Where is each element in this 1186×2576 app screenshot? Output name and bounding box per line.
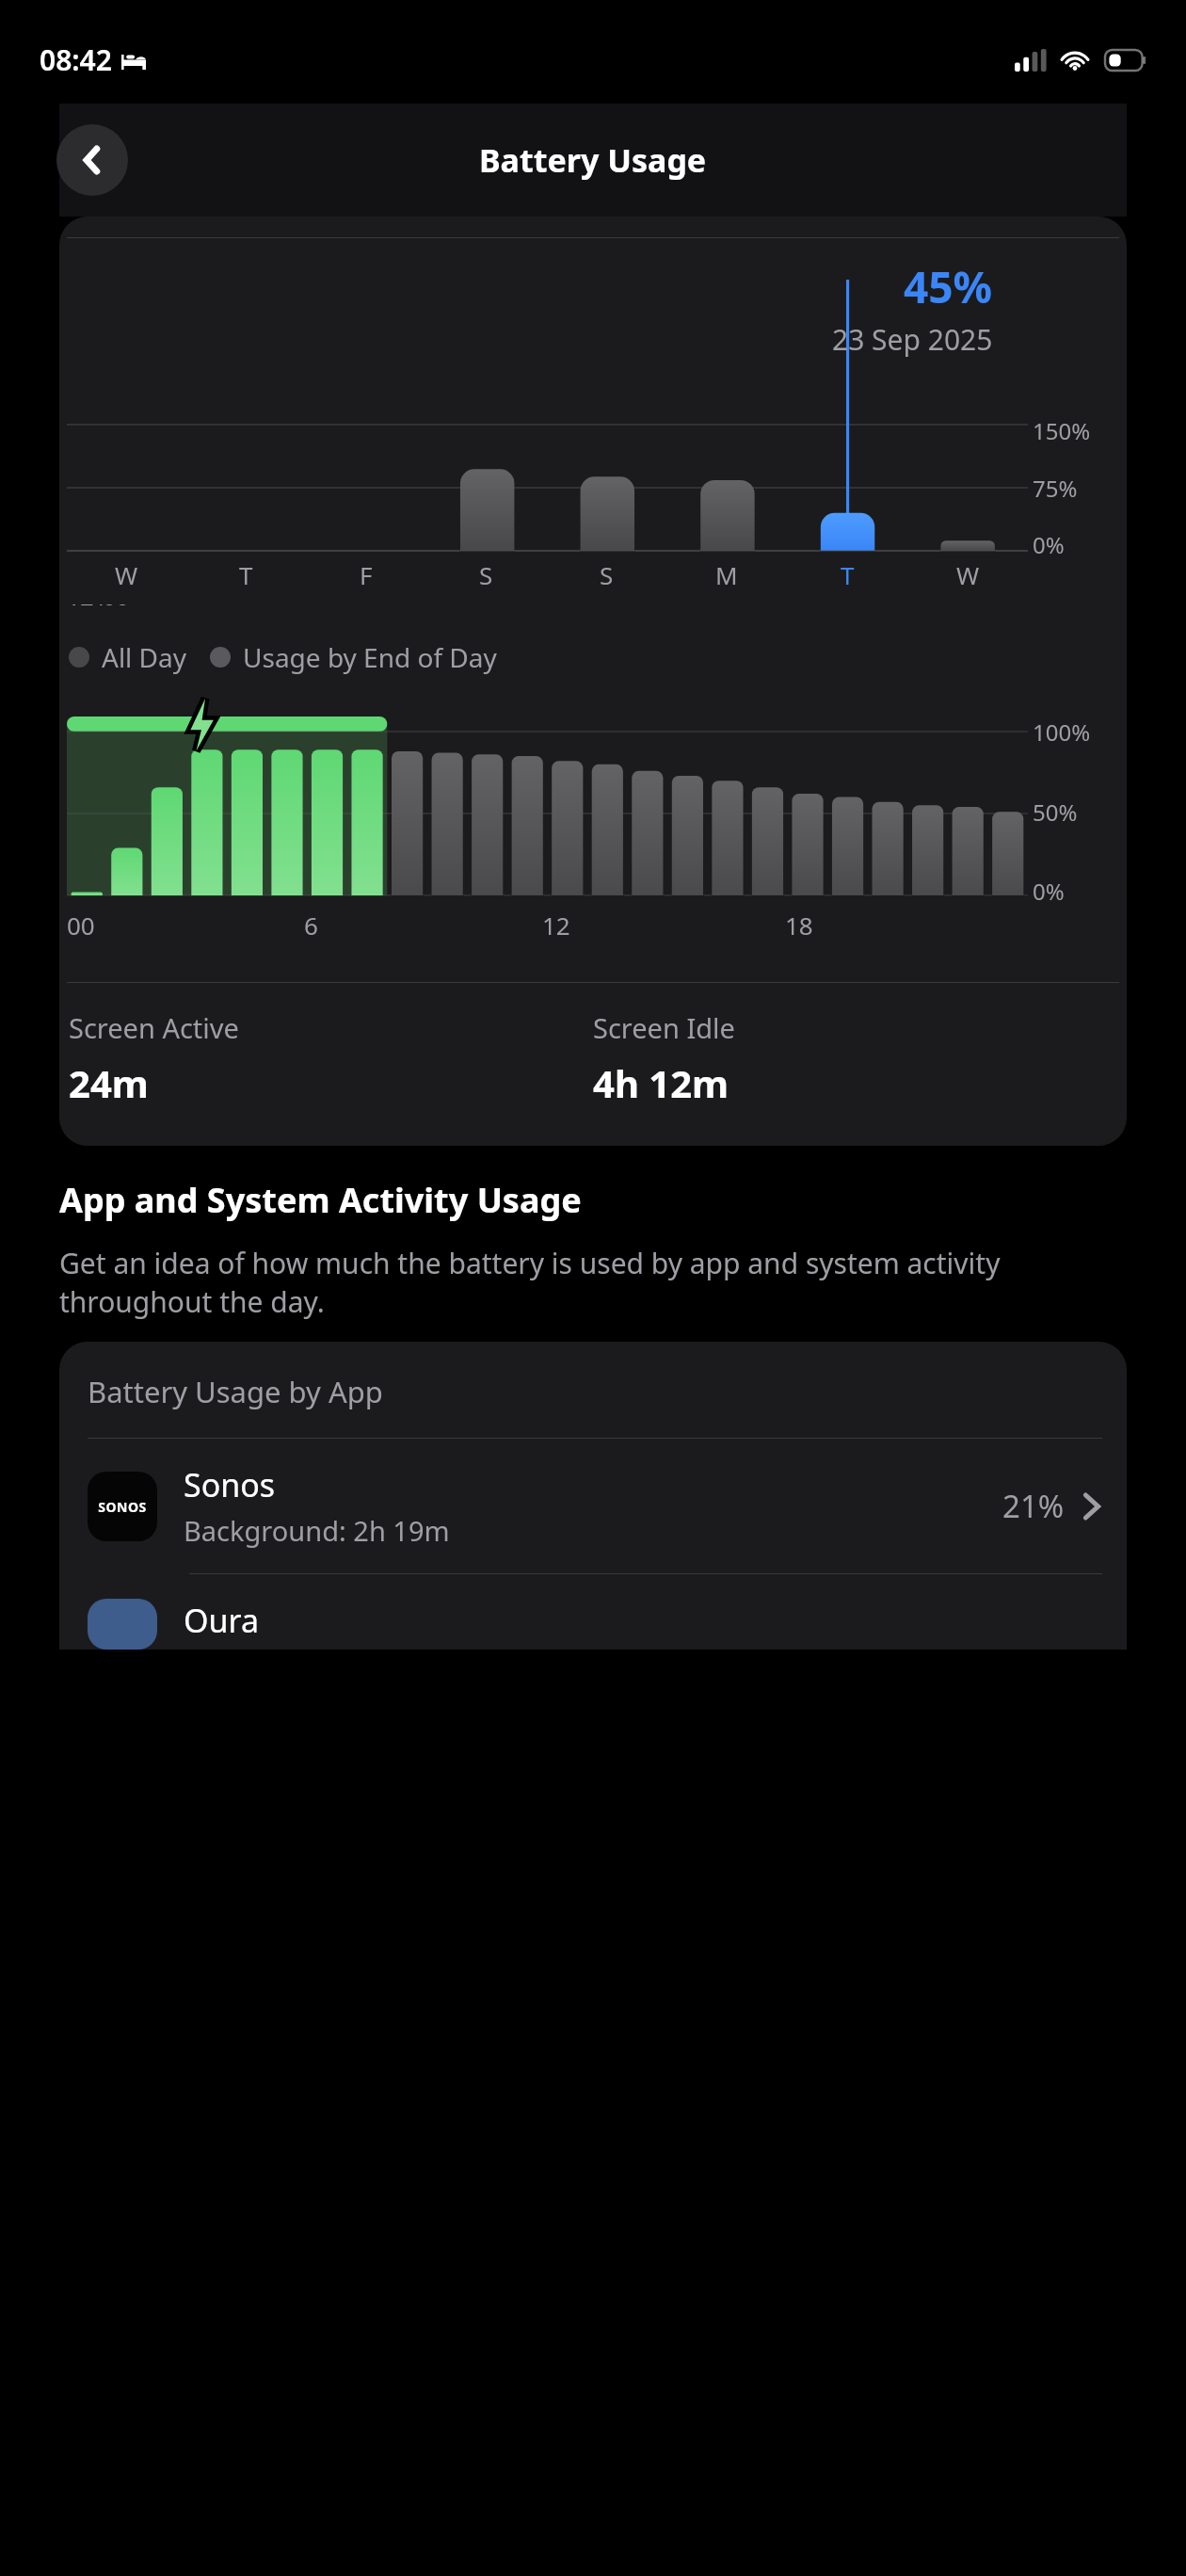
staticText: 150%	[1033, 415, 1091, 446]
staticText: Background: 2h 19m	[184, 1512, 450, 1549]
staticText: S	[600, 558, 614, 591]
staticText: T	[841, 558, 855, 591]
staticText: W	[115, 558, 138, 591]
staticText: W	[956, 558, 980, 591]
staticText: Screen Active	[69, 1009, 239, 1046]
button[interactable]: SONOS	[59, 1439, 1127, 1573]
staticText: F	[360, 558, 373, 591]
staticText: 21%	[1002, 1485, 1065, 1527]
staticText: 24m	[69, 1057, 149, 1108]
staticText: Battery Usage by App	[88, 1372, 383, 1411]
staticText: 00	[67, 909, 95, 942]
staticText: 4h 12m	[593, 1057, 729, 1108]
staticText: Usage by End of Day	[243, 639, 497, 675]
staticText: Sonos	[184, 1463, 276, 1506]
staticText: Get an idea of how much the battery is u…	[59, 1244, 1127, 1321]
staticText: 12	[542, 909, 570, 942]
button[interactable]: Oura	[59, 1574, 1127, 1650]
staticText: 6	[304, 909, 318, 942]
staticText: App and System Activity Usage	[59, 1177, 582, 1223]
staticText: 18	[785, 909, 813, 942]
staticText: 08:42	[40, 40, 112, 79]
staticText: T	[239, 558, 253, 591]
staticText: 100%	[1033, 716, 1091, 748]
staticText: SONOS	[98, 1498, 147, 1516]
staticText: All Day	[102, 639, 187, 675]
staticText: S	[479, 558, 493, 591]
staticText: 45%	[904, 257, 993, 316]
staticText: 0%	[1033, 529, 1065, 560]
staticText: Screen Idle	[593, 1009, 735, 1046]
staticText: Battery Usage	[479, 138, 707, 182]
staticText: Oura	[184, 1599, 260, 1642]
staticText: 75%	[1033, 473, 1078, 504]
staticText: 0%	[1033, 876, 1065, 907]
button[interactable]: Back	[56, 124, 128, 196]
staticText: 23 Sep 2025	[832, 320, 993, 359]
staticText: M	[715, 558, 738, 591]
staticText: 50%	[1033, 797, 1078, 828]
